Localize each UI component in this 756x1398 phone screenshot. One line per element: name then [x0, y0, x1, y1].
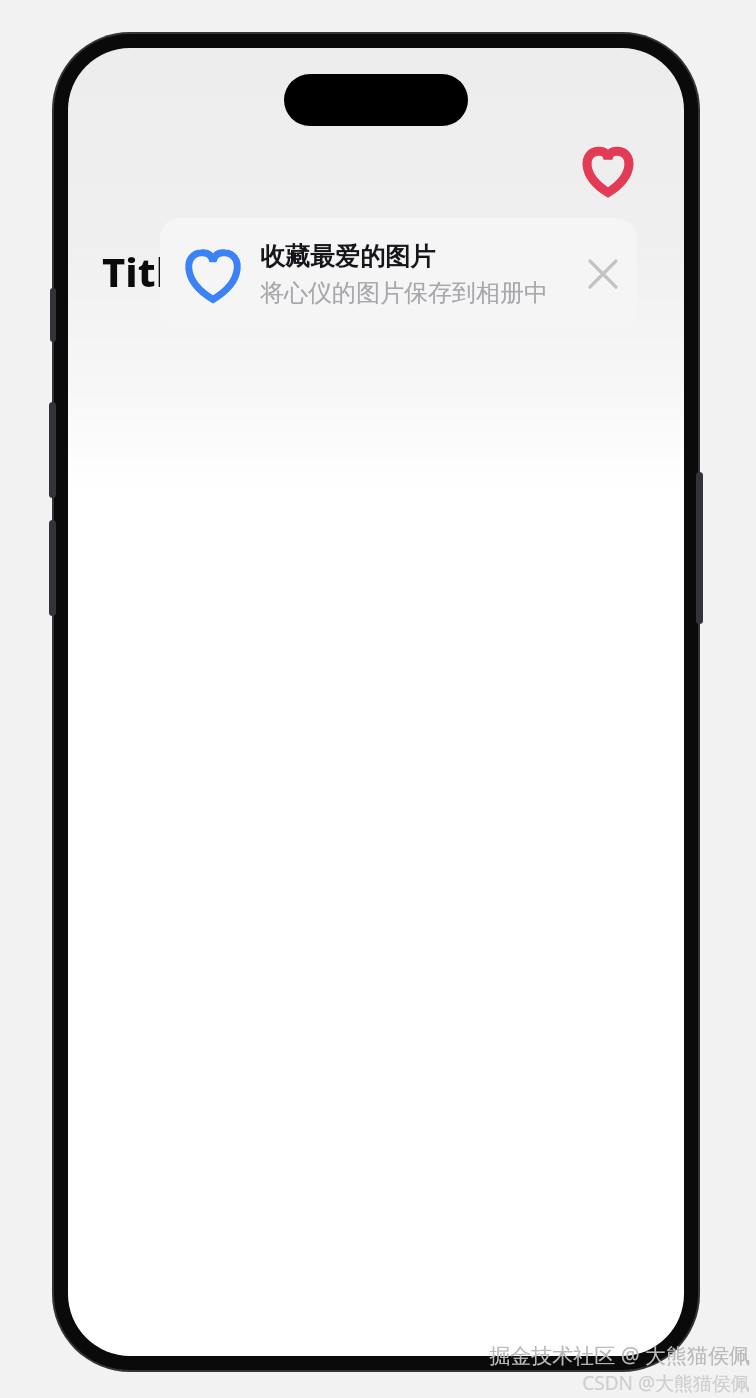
staticText: 掘金技术社区 @ 大熊猫侯佩 [489, 1341, 750, 1370]
staticText: 将心仪的图片保存到相册中 [260, 278, 548, 308]
button[interactable]: Favorite [576, 138, 640, 202]
staticText: Title 演示 [102, 244, 283, 299]
button[interactable]: Close [577, 248, 629, 300]
staticText: 收藏最爱的图片 [260, 241, 435, 272]
staticText: CSDN @大熊猫侯佩 [582, 1370, 750, 1396]
button[interactable]: 收藏最爱的图片 [160, 218, 637, 330]
